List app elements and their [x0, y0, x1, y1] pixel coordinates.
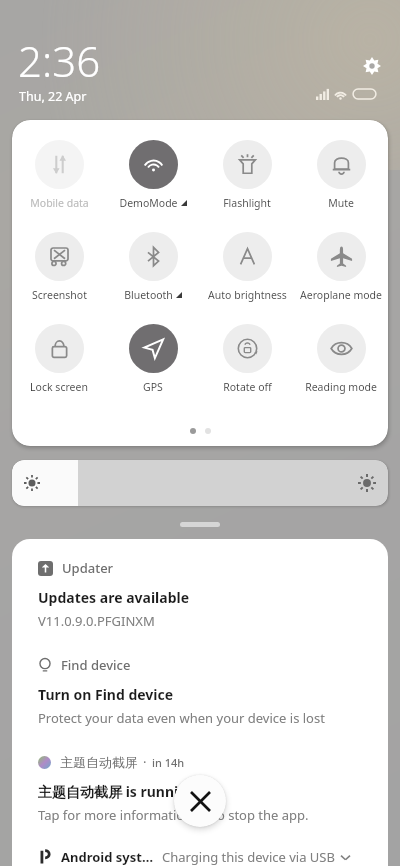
- button[interactable]: Settings: [358, 52, 386, 80]
- staticText: Lock screen: [30, 380, 88, 394]
- staticText: Android syst…: [61, 848, 154, 866]
- button[interactable]: Mobile data: [12, 140, 106, 210]
- staticText: 主题自动截屏: [60, 754, 138, 770]
- staticText: in 14h: [152, 755, 185, 770]
- staticText: Thu, 22 Apr: [19, 88, 87, 105]
- button[interactable]: 主题自动截屏: [12, 753, 388, 824]
- staticText: Bluetooth: [124, 288, 173, 302]
- button[interactable]: [12, 460, 388, 506]
- staticText: GPS: [143, 380, 163, 394]
- button[interactable]: Find device: [12, 656, 388, 727]
- button[interactable]: Bluetooth: [106, 232, 200, 302]
- button[interactable]: Rotate off: [200, 324, 294, 394]
- staticText: Mute: [328, 196, 354, 210]
- staticText: Turn on Find device: [38, 685, 174, 704]
- button[interactable]: Clear all notifications: [174, 775, 226, 827]
- staticText: Flashlight: [223, 196, 271, 210]
- button[interactable]: Lock screen: [12, 324, 106, 394]
- staticText: ·: [143, 753, 147, 771]
- staticText: Protect your data even when your device …: [38, 709, 325, 727]
- staticText: Find device: [61, 656, 131, 674]
- staticText: Auto brightness: [208, 288, 287, 302]
- staticText: Updates are available: [38, 588, 190, 607]
- staticText: 2:36: [18, 32, 101, 89]
- button[interactable]: Aeroplane mode: [294, 232, 388, 302]
- button[interactable]: DemoMode: [106, 140, 200, 210]
- staticText: Reading mode: [305, 380, 377, 394]
- button[interactable]: Mute: [294, 140, 388, 210]
- staticText: Charging this device via USB: [162, 848, 335, 866]
- button[interactable]: Updater: [12, 539, 388, 630]
- button[interactable]: Android syst…: [12, 848, 388, 866]
- button[interactable]: GPS: [106, 324, 200, 394]
- staticText: Screenshot: [32, 288, 87, 302]
- staticText: Aeroplane mode: [300, 288, 382, 302]
- staticText: Tap for more information or to stop the …: [38, 806, 309, 824]
- staticText: Mobile data: [30, 196, 89, 210]
- button[interactable]: Flashlight: [200, 140, 294, 210]
- button[interactable]: Screenshot: [12, 232, 106, 302]
- staticText: DemoMode: [119, 196, 178, 210]
- button[interactable]: Auto brightness: [200, 232, 294, 302]
- button[interactable]: Reading mode: [294, 324, 388, 394]
- staticText: 主题自动截屏 is running: [38, 782, 197, 801]
- staticText: V11.0.9.0.PFGINXM: [38, 612, 155, 630]
- staticText: Rotate off: [223, 380, 272, 394]
- staticText: Updater: [62, 559, 114, 577]
